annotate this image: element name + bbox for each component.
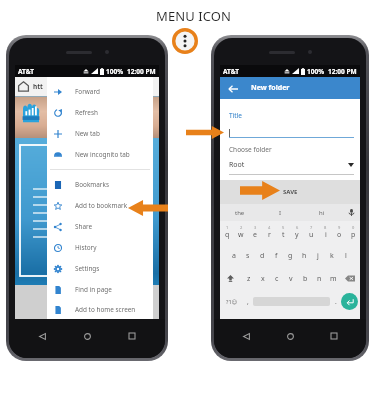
button[interactable]: ?1☺: [222, 290, 242, 313]
button[interactable]: Recent apps: [322, 324, 346, 348]
staticText: y: [295, 230, 299, 240]
button[interactable]: g: [283, 244, 297, 267]
button[interactable]: Navigate back: [226, 82, 239, 95]
button[interactable]: 4: [262, 221, 276, 244]
staticText: SAVE: [283, 188, 298, 196]
button[interactable]: a: [227, 244, 241, 267]
button[interactable]: History: [47, 237, 153, 258]
staticText: m: [330, 274, 337, 284]
button[interactable]: 7: [304, 221, 318, 244]
staticText: c: [275, 274, 279, 284]
staticText: 9: [338, 225, 341, 230]
button[interactable]: Bookmarks: [47, 174, 153, 195]
button[interactable]: Enter: [341, 293, 358, 310]
button[interactable]: 9: [332, 221, 346, 244]
staticText: o: [337, 230, 342, 240]
staticText: 8: [324, 225, 327, 230]
button[interactable]: SAVE: [220, 180, 360, 204]
button[interactable]: 0: [346, 221, 360, 244]
button[interactable]: 5: [276, 221, 290, 244]
staticText: d: [260, 251, 265, 261]
staticText: t: [282, 230, 285, 240]
button[interactable]: s: [241, 244, 255, 267]
button[interactable]: z: [241, 267, 256, 290]
staticText: Settings: [75, 264, 100, 273]
button[interactable]: 6: [290, 221, 304, 244]
button[interactable]: Menu icon: [172, 28, 198, 54]
button[interactable]: the: [220, 204, 260, 221]
button[interactable]: hi: [301, 204, 342, 221]
button[interactable]: 1: [220, 221, 234, 244]
button[interactable]: Voice input: [342, 204, 360, 221]
button[interactable]: .: [330, 290, 341, 313]
button[interactable]: New tab: [47, 123, 153, 144]
button[interactable]: l: [339, 244, 353, 267]
staticText: e: [253, 230, 257, 240]
staticText: 7: [310, 225, 313, 230]
staticText: History: [75, 243, 97, 252]
button[interactable]: Back: [234, 324, 258, 348]
staticText: r: [268, 230, 271, 240]
staticText: I: [279, 209, 282, 217]
button[interactable]: Forward: [47, 81, 153, 102]
button[interactable]: 3: [248, 221, 262, 244]
button[interactable]: Backspace: [340, 267, 360, 290]
button[interactable]: Home: [278, 324, 302, 348]
button[interactable]: Back: [30, 324, 54, 348]
staticText: b: [303, 274, 308, 284]
button[interactable]: Refresh: [47, 102, 153, 123]
staticText: 100%: [307, 67, 325, 76]
staticText: 4: [268, 225, 271, 230]
button[interactable]: j: [311, 244, 325, 267]
staticText: n: [317, 274, 322, 284]
staticText: w: [238, 230, 244, 240]
button[interactable]: b: [298, 267, 312, 290]
button[interactable]: Home: [75, 324, 99, 348]
staticText: AT&T: [223, 67, 239, 76]
button[interactable]: Add to home screen: [47, 300, 153, 319]
button[interactable]: d: [255, 244, 269, 267]
button[interactable]: h: [297, 244, 311, 267]
staticText: x: [261, 274, 265, 284]
staticText: k: [330, 251, 334, 261]
staticText: a: [232, 251, 236, 261]
staticText: f: [275, 251, 278, 261]
button[interactable]: Shift: [220, 267, 241, 290]
button[interactable]: v: [284, 267, 298, 290]
staticText: AT&T: [18, 67, 34, 76]
button[interactable]: ,: [242, 290, 253, 313]
button[interactable]: Recent apps: [120, 324, 144, 348]
staticText: ?1☺: [226, 298, 238, 305]
button[interactable]: 8: [318, 221, 332, 244]
staticText: 100%: [106, 67, 124, 76]
staticText: New folder: [251, 83, 290, 93]
staticText: 2: [240, 225, 243, 230]
staticText: s: [246, 251, 250, 261]
staticText: 12:00 PM: [328, 67, 357, 76]
button[interactable]: x: [256, 267, 270, 290]
staticText: Add to bookmark: [75, 201, 128, 210]
button[interactable]: k: [325, 244, 339, 267]
staticText: htt: [33, 82, 43, 91]
button[interactable]: c: [270, 267, 284, 290]
staticText: MENU ICON: [156, 7, 232, 25]
button[interactable]: Share: [47, 216, 153, 237]
button[interactable]: Settings: [47, 258, 153, 279]
staticText: 5: [282, 225, 285, 230]
button[interactable]: I: [260, 204, 301, 221]
staticText: 3: [254, 225, 257, 230]
staticText: Bookmarks: [75, 180, 109, 189]
button[interactable]: Add to bookmark: [47, 195, 153, 216]
staticText: Refresh: [75, 108, 98, 117]
button[interactable]: f: [269, 244, 283, 267]
staticText: h: [302, 251, 307, 261]
button[interactable]: n: [312, 267, 326, 290]
button[interactable]: m: [326, 267, 340, 290]
staticText: Choose folder: [229, 145, 272, 154]
staticText: the: [235, 209, 245, 217]
button[interactable]: Find in page: [47, 279, 153, 300]
button[interactable]: New incognito tab: [47, 144, 153, 165]
staticText: Root: [229, 160, 245, 170]
button[interactable]: 2: [234, 221, 248, 244]
